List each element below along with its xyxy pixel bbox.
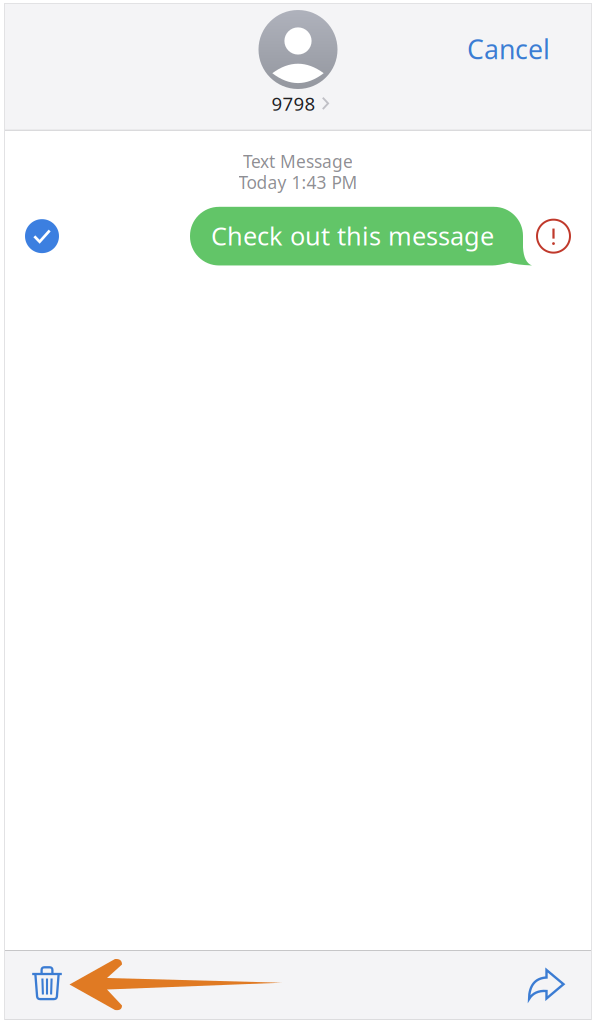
button[interactable]: Delete (4, 951, 80, 1018)
staticText: Check out this message (211, 219, 494, 252)
button[interactable]: Cancel (453, 21, 564, 77)
button[interactable]: Forward (512, 950, 592, 1020)
staticText: 9798 (271, 91, 315, 116)
staticText: Text Message (243, 150, 353, 173)
staticText: Cancel (467, 31, 550, 67)
button[interactable]: Check out this message (4, 207, 592, 265)
button[interactable]: 9798 (258, 3, 337, 131)
staticText: Today 1:43 PM (238, 171, 357, 194)
